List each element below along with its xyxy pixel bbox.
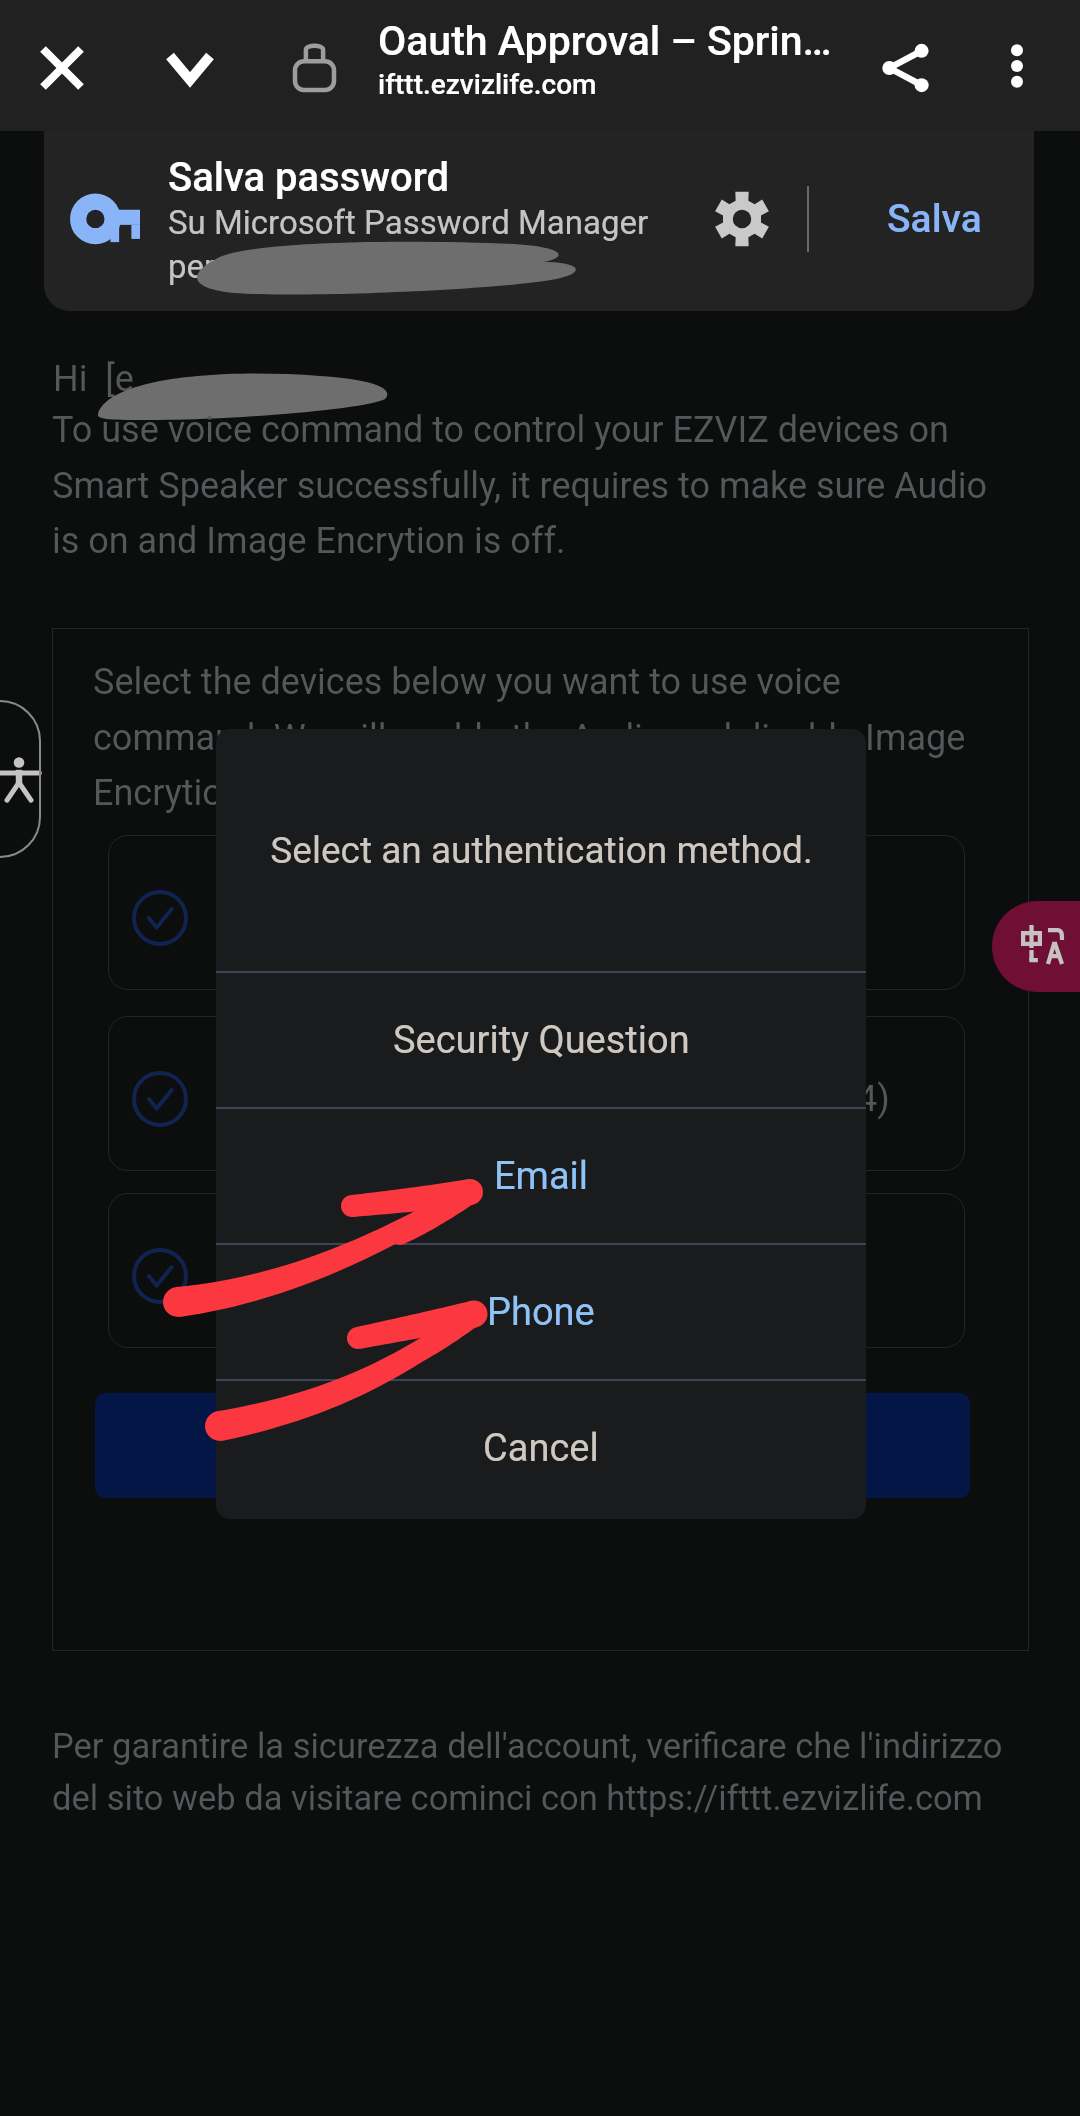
button[interactable]: Settings: [697, 174, 787, 264]
staticText: ifttt.ezvizlife.com: [378, 68, 597, 101]
button[interactable]: Site information: [272, 26, 356, 110]
staticText: To use voice command to control your EZV…: [52, 409, 1014, 561]
button[interactable]: Phone: [216, 1245, 866, 1379]
staticText: Cancel: [483, 1426, 599, 1471]
staticText: Oauth Approval – Sprin…: [378, 17, 832, 65]
staticText: Select an authentication method.: [270, 829, 813, 872]
button[interactable]: More options: [975, 24, 1059, 108]
button[interactable]: [95, 1393, 970, 1498]
staticText: Salva: [887, 196, 982, 242]
staticText: Select the devices below you want to use…: [93, 661, 983, 813]
staticText: EZVIZ Video Doorbell Pro (DB1 0451): [226, 1255, 820, 1297]
staticText: Hi [e: [53, 358, 134, 400]
staticText: Su Microsoft Password Manager per: [168, 203, 649, 286]
button[interactable]: Translate: [992, 901, 1080, 992]
button[interactable]: EZVIZ Video Doorbell Pro (DB1 0451): [108, 1193, 965, 1348]
button[interactable]: Expand: [148, 26, 232, 110]
staticText: Per garantire la sicurezza dell'account,…: [52, 1726, 1027, 1819]
button[interactable]: Cancel: [216, 1381, 866, 1515]
staticText: Security Question: [393, 1018, 690, 1063]
button[interactable]: Share: [862, 24, 950, 112]
button[interactable]: Email: [216, 1109, 866, 1243]
button[interactable]: Close: [20, 26, 104, 110]
button[interactable]: EZVIZ Smart Home Camera (C6N 1023): [108, 835, 965, 990]
button[interactable]: Salva: [844, 169, 1024, 269]
button[interactable]: Security Question: [216, 973, 866, 1107]
button[interactable]: EZVIZ Indoor Pan-Tilt Camera (CP1 0024): [108, 1016, 965, 1171]
staticText: Phone: [487, 1290, 595, 1335]
staticText: Email: [494, 1154, 589, 1199]
staticText: Salva password: [168, 154, 449, 201]
staticText: EZVIZ Indoor Pan-Tilt Camera (CP1 0024): [226, 1078, 890, 1120]
button[interactable]: Accessibility: [0, 700, 41, 858]
